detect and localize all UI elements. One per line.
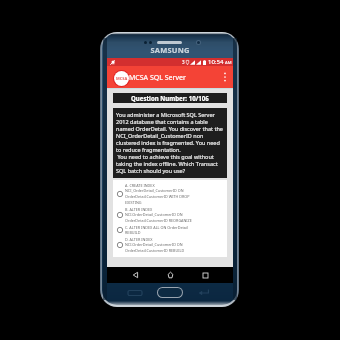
button[interactable]: B. ALTER INDEX NCI.OrderDetail_CustomerI… <box>113 206 227 224</box>
button[interactable]: A. CREATE INDEX NCI_OrderDetail_Customer… <box>113 182 227 206</box>
staticText: You administer a Microsoft SQL Server 20… <box>116 111 223 153</box>
staticText: 3 <box>182 59 185 65</box>
staticText: MCSA <box>116 76 128 81</box>
staticText: A. CREATE INDEX NCI_OrderDetail_Customer… <box>125 183 190 205</box>
button[interactable]: C. ALTER INDEX ALL ON OrderDetail REBUIL… <box>113 224 227 236</box>
staticText: SAMSUNG <box>145 45 195 55</box>
staticText: You need to achieve this goal without ta… <box>116 153 223 174</box>
button[interactable]: Recents <box>198 267 212 283</box>
button[interactable]: Home <box>163 267 177 283</box>
staticText: MCSA SQL Server <box>129 73 186 83</box>
button[interactable]: Back <box>128 267 142 283</box>
staticText: 10:54 <box>208 58 224 66</box>
staticText: B. ALTER INDEX NCI.OrderDetail_CustomerI… <box>125 207 192 223</box>
staticText: D. ALTER INDEX NCI.OrderDetail_CustomerI… <box>125 237 185 253</box>
staticText: Question Number: 10/106 <box>131 94 209 102</box>
staticText: C. ALTER INDEX ALL ON OrderDetail REBUIL… <box>125 225 188 235</box>
staticText: AM <box>225 60 232 66</box>
button[interactable]: More options <box>220 67 229 87</box>
button[interactable]: D. ALTER INDEX NCI.OrderDetail_CustomerI… <box>113 236 227 254</box>
